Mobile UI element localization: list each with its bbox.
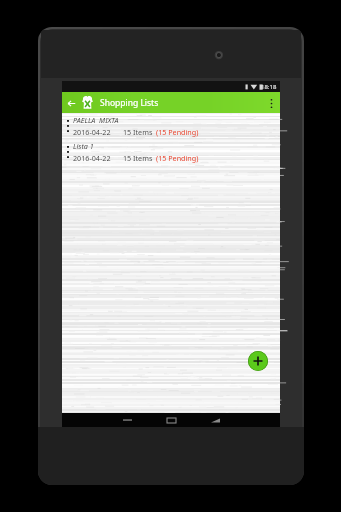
button[interactable]: More options (262, 94, 280, 112)
button[interactable]: Recents (201, 413, 229, 427)
staticText: (15 Pending) (156, 127, 199, 137)
button[interactable]: Home (157, 413, 185, 427)
button[interactable]: Reorder (62, 139, 280, 165)
staticText: PAELLA MIXTA (73, 115, 119, 125)
staticText: Lista 1 (73, 141, 94, 151)
other: App icon (80, 95, 95, 110)
staticText: 2016-04-22 (73, 153, 111, 163)
staticText: 18:18 (261, 83, 277, 91)
other: Reorder (62, 113, 73, 139)
button[interactable]: Reorder (62, 113, 280, 139)
button[interactable]: Back (113, 413, 141, 427)
other: Reorder (62, 139, 73, 165)
staticText: 15 Items (123, 127, 153, 137)
staticText: Shopping Lists (100, 97, 159, 109)
button[interactable]: Add list (248, 351, 268, 371)
staticText: (15 Pending) (156, 153, 199, 163)
button[interactable]: Back (62, 94, 80, 112)
staticText: 2016-04-22 (73, 127, 111, 137)
staticText: 15 Items (123, 153, 153, 163)
